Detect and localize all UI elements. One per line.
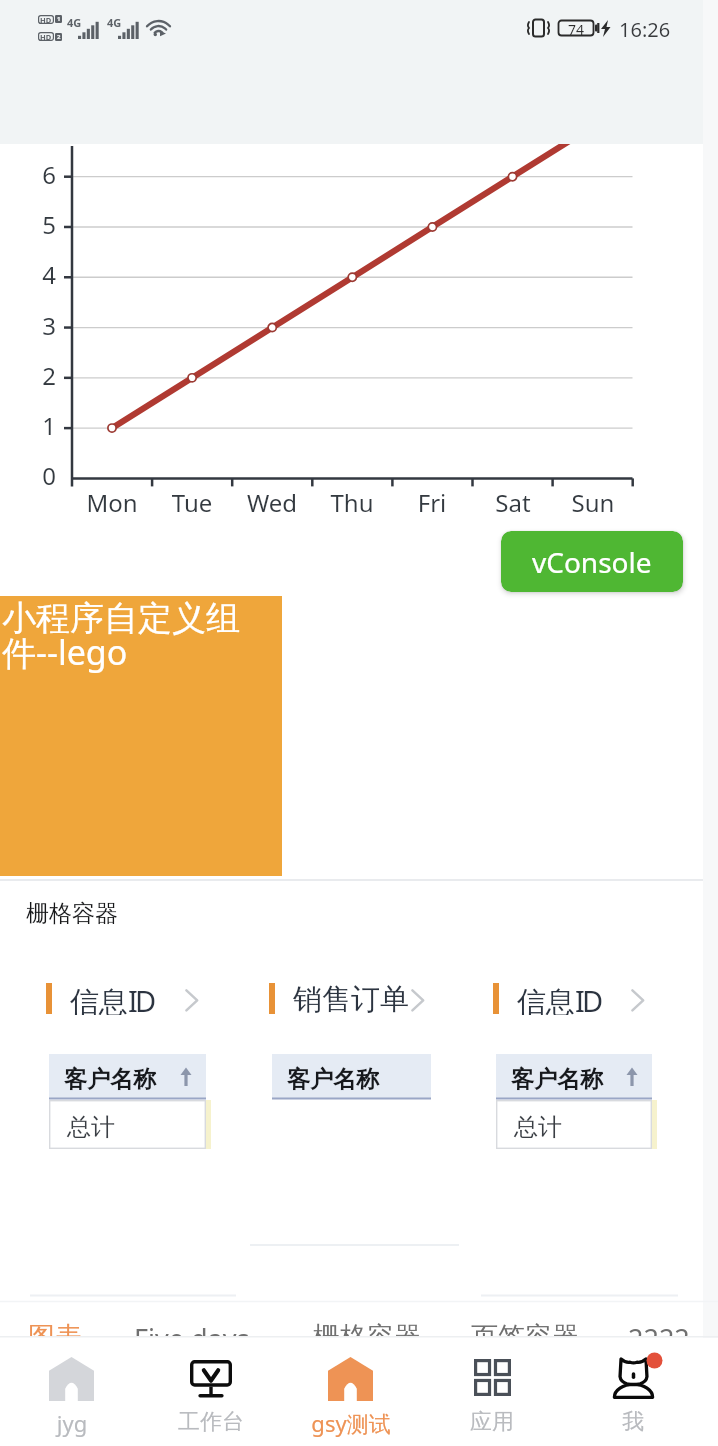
button[interactable]: Five days <box>134 1305 250 1337</box>
staticText: 信息I <box>517 981 585 1015</box>
button[interactable]: 信息I <box>493 981 651 1015</box>
staticText: 74 <box>568 20 585 36</box>
staticText: HD <box>40 32 52 41</box>
button[interactable]: 2222 <box>628 1305 690 1337</box>
staticText: gsy测试 <box>281 1408 421 1438</box>
button[interactable]: 信息I <box>46 981 205 1015</box>
button[interactable]: 工作台 <box>141 1338 281 1446</box>
staticText: 工作台 <box>141 1408 281 1436</box>
staticText: 栅格容器 <box>313 1320 421 1337</box>
staticText: 2 <box>57 33 61 41</box>
staticText: 1 <box>57 15 61 23</box>
staticText: 4G <box>67 15 82 30</box>
staticText: Sun <box>548 486 638 519</box>
staticText: 6 <box>16 158 56 191</box>
staticText: Sat <box>468 486 558 519</box>
button[interactable]: 客户名称 <box>272 1054 431 1099</box>
staticText: 客户名称 <box>287 1065 379 1094</box>
staticText: Tue <box>147 486 237 519</box>
staticText: Mon <box>67 486 157 519</box>
staticText: 客户名称 <box>511 1065 603 1094</box>
staticText: Five days <box>134 1320 250 1337</box>
button[interactable]: 图表 <box>28 1305 82 1337</box>
staticText: 页签容器 <box>471 1320 579 1337</box>
button[interactable]: jyg <box>2 1338 142 1446</box>
staticText: 总计 <box>514 1112 562 1142</box>
staticText: 2 <box>16 359 56 392</box>
staticText: 总计 <box>67 1112 115 1142</box>
button[interactable]: 栅格容器 <box>313 1305 421 1337</box>
staticText: vConsole <box>532 543 652 581</box>
staticText: Fri <box>387 486 477 519</box>
button[interactable]: vConsole <box>501 531 683 592</box>
staticText: 应用 <box>422 1408 562 1436</box>
staticText: 16:26 <box>619 16 671 43</box>
button[interactable]: 销售订单 <box>269 981 431 1015</box>
staticText: Thu <box>307 486 397 519</box>
staticText: 我 <box>563 1408 703 1436</box>
button[interactable]: 应用 <box>422 1338 562 1446</box>
staticText: 4 <box>16 258 56 291</box>
staticText: 5 <box>16 208 56 241</box>
other: Sort ascending <box>178 1067 194 1087</box>
staticText: 3 <box>16 309 56 342</box>
other: Sort ascending <box>624 1067 640 1087</box>
button[interactable]: 我 <box>563 1338 703 1446</box>
staticText: D <box>582 981 604 1015</box>
staticText: 1 <box>16 409 56 442</box>
staticText: Wed <box>227 486 317 519</box>
staticText: 4G <box>107 15 122 30</box>
staticText: 销售订单 <box>293 981 409 1015</box>
button[interactable]: 页签容器 <box>471 1305 579 1337</box>
staticText: 客户名称 <box>64 1065 156 1094</box>
button[interactable]: 客户名称 <box>49 1054 206 1099</box>
staticText: 栅格容器 <box>26 899 118 928</box>
staticText: 2222 <box>628 1320 690 1337</box>
staticText: 信息I <box>70 981 138 1015</box>
staticText: 小程序自定义组 件--lego <box>2 597 241 675</box>
staticText: 图表 <box>28 1320 82 1337</box>
button[interactable]: 客户名称 <box>496 1054 652 1099</box>
staticText: 0 <box>16 459 56 492</box>
staticText: jyg <box>2 1408 142 1438</box>
staticText: HD <box>40 15 52 24</box>
button[interactable]: gsy测试 <box>281 1338 421 1446</box>
staticText: D <box>135 981 157 1015</box>
